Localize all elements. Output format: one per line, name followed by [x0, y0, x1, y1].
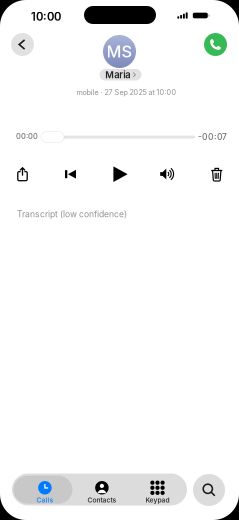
staticText: Maria	[105, 69, 130, 80]
staticText: mobile · 27 Sep 2025 at 10:00	[76, 88, 176, 97]
button[interactable]: Calls	[17, 478, 73, 506]
staticText: Keypad	[145, 496, 169, 504]
button[interactable]: Speaker	[160, 168, 176, 180]
button[interactable]: Share	[17, 167, 28, 181]
button[interactable]: Play	[113, 166, 128, 182]
button[interactable]: Contacts	[74, 478, 130, 506]
button[interactable]: Search	[193, 474, 225, 506]
button[interactable]: Keypad	[129, 478, 185, 506]
button[interactable]: Call	[204, 33, 227, 56]
staticText: Transcript (low confidence)	[17, 209, 127, 219]
staticText: 10:00	[31, 10, 61, 24]
button[interactable]: Delete	[211, 167, 222, 181]
button[interactable]: Rewind	[65, 170, 76, 179]
staticText: -00:07	[198, 132, 227, 142]
staticText: Contacts	[87, 496, 116, 504]
staticText: Calls	[36, 496, 53, 504]
staticText: 00:00	[16, 132, 38, 141]
button[interactable]: Back	[11, 33, 34, 56]
button[interactable]: Maria	[99, 69, 141, 80]
staticText: MS	[106, 42, 132, 61]
